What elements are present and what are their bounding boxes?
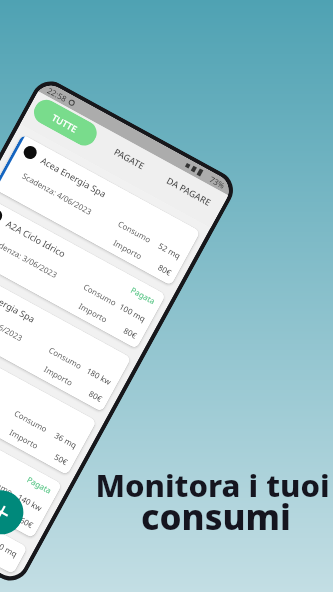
staticText: 80€ — [87, 388, 105, 404]
staticText: Monitora i tuoi — [95, 464, 330, 506]
button[interactable]: Enel Luce Gas — [0, 387, 62, 538]
staticText: DA PAGARE — [165, 174, 213, 208]
staticText: 73% — [208, 173, 227, 191]
staticText: 50€ — [52, 451, 70, 467]
staticText: TUTTE — [50, 111, 80, 135]
staticText: Pagata — [25, 473, 54, 496]
button[interactable]: TUTTE — [29, 95, 101, 150]
staticText: Importo — [0, 489, 6, 514]
staticText: Scadenza: 2/06/2023 — [0, 296, 25, 343]
staticText: Scadenza: 4/06/2023 — [20, 170, 94, 217]
button[interactable]: Acea Energia Spa — [0, 134, 201, 286]
staticText: 90 mq — [0, 538, 20, 559]
staticText: Importo — [111, 237, 144, 261]
staticText: consumi — [141, 493, 291, 541]
button[interactable]: Acea Ato 2 Spa — [0, 323, 97, 475]
button[interactable]: Enel Energia Spa — [0, 260, 131, 412]
button[interactable]: DA PAGARE — [158, 166, 220, 216]
staticText: Importo — [42, 363, 75, 388]
staticText: 180 kw — [85, 365, 114, 387]
staticText: 52 mq — [157, 240, 183, 261]
staticText: Pagata — [129, 284, 158, 307]
staticText: 80€ — [122, 324, 139, 341]
button[interactable]: PAGATE — [102, 135, 157, 181]
staticText: Consumo — [116, 218, 153, 245]
staticText: 140 kw — [16, 491, 45, 514]
staticText: Scadenza: 3/06/2023 — [0, 233, 60, 280]
staticText: Consumo — [0, 470, 15, 497]
staticText: A2A Ciclo Idrico — [4, 217, 68, 259]
staticText: 22:58 — [46, 84, 69, 104]
staticText: PAGATE — [112, 145, 147, 172]
button[interactable]: Aggiungi bolletta — [0, 482, 31, 542]
staticText: Importo — [77, 300, 109, 324]
button[interactable]: A2A Ciclo Idrico — [0, 197, 166, 349]
staticText: Enel Energia Spa — [0, 280, 38, 325]
staticText: 36 mq — [53, 429, 79, 451]
button[interactable]: Iren Mercato — [0, 450, 28, 574]
staticText: Acea Energia Spa — [39, 154, 109, 200]
staticText: Consumo — [47, 344, 84, 371]
staticText: 60€ — [18, 514, 35, 530]
staticText: Consumo — [82, 281, 119, 308]
staticText: 80€ — [156, 261, 174, 278]
staticText: Consumo — [12, 407, 49, 434]
staticText: 100 mq — [118, 301, 148, 324]
staticText: Importo — [8, 426, 40, 451]
